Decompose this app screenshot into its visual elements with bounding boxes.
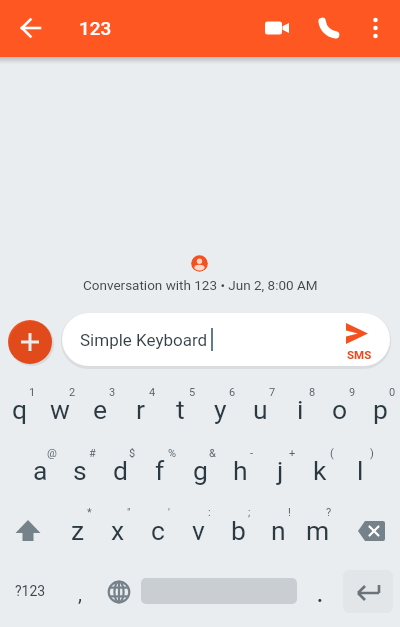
- button[interactable]: SMS: [338, 316, 380, 364]
- staticText: 4: [149, 386, 156, 399]
- staticText: Simple Keyboard: [80, 330, 208, 350]
- button[interactable]: h: [220, 442, 260, 498]
- button[interactable]: o: [320, 381, 360, 437]
- staticText: a: [33, 455, 48, 486]
- staticText: 6: [229, 386, 236, 399]
- staticText: i: [297, 394, 304, 425]
- staticText: u: [253, 394, 268, 425]
- staticText: 3: [109, 386, 116, 399]
- button[interactable]: [2, 503, 54, 559]
- button[interactable]: b: [218, 502, 258, 558]
- button[interactable]: f: [140, 442, 180, 498]
- button[interactable]: z: [58, 502, 98, 558]
- button[interactable]: t: [160, 381, 200, 437]
- staticText: 8: [309, 386, 316, 399]
- staticText: 9: [349, 386, 356, 399]
- button[interactable]: p: [360, 381, 400, 437]
- button[interactable]: ,: [62, 573, 98, 613]
- button[interactable]: j: [260, 442, 300, 498]
- staticText: SMS: [347, 348, 372, 361]
- staticText: s: [73, 455, 87, 486]
- staticText: :: [208, 506, 211, 519]
- staticText: b: [231, 515, 246, 546]
- staticText: w: [50, 394, 70, 425]
- button[interactable]: [8, 320, 52, 364]
- staticText: m: [306, 515, 330, 546]
- staticText: p: [373, 394, 388, 425]
- staticText: t: [176, 394, 185, 425]
- button[interactable]: d: [100, 442, 140, 498]
- staticText: 5: [189, 386, 196, 399]
- button[interactable]: [352, 4, 400, 52]
- button[interactable]: v: [178, 502, 218, 558]
- staticText: #: [89, 447, 96, 460]
- button[interactable]: w: [40, 381, 80, 437]
- button[interactable]: [343, 570, 393, 613]
- staticText: 0: [389, 386, 396, 399]
- staticText: ?: [326, 506, 332, 519]
- staticText: 123: [79, 17, 112, 39]
- staticText: r: [136, 394, 145, 425]
- staticText: ,: [78, 582, 82, 605]
- button[interactable]: [252, 4, 300, 52]
- staticText: c: [151, 515, 165, 546]
- button[interactable]: [7, 4, 55, 52]
- staticText: n: [271, 515, 286, 546]
- staticText: o: [332, 394, 348, 425]
- staticText: ': [168, 506, 170, 519]
- staticText: 1: [29, 386, 36, 399]
- staticText: (: [330, 447, 334, 460]
- staticText: -: [250, 447, 254, 460]
- button[interactable]: u: [240, 381, 280, 437]
- staticText: ;: [248, 506, 251, 519]
- button[interactable]: k: [300, 442, 340, 498]
- button[interactable]: g: [180, 442, 220, 498]
- staticText: !: [288, 506, 291, 519]
- staticText: v: [192, 515, 205, 546]
- button[interactable]: c: [138, 502, 178, 558]
- staticText: x: [111, 515, 125, 546]
- button[interactable]: l: [340, 442, 380, 498]
- button[interactable]: r: [120, 381, 160, 437]
- button[interactable]: .: [302, 574, 338, 614]
- staticText: 2: [69, 386, 76, 399]
- staticText: d: [113, 455, 128, 486]
- staticText: ): [370, 447, 374, 460]
- button[interactable]: m: [298, 502, 338, 558]
- button[interactable]: n: [258, 502, 298, 558]
- staticText: l: [357, 455, 364, 486]
- staticText: h: [233, 455, 248, 486]
- button[interactable]: [304, 4, 352, 52]
- staticText: k: [313, 455, 327, 486]
- staticText: +: [289, 447, 296, 460]
- button[interactable]: [62, 313, 390, 366]
- staticText: 7: [269, 386, 276, 399]
- staticText: y: [214, 394, 227, 425]
- button[interactable]: s: [60, 442, 100, 498]
- button[interactable]: a: [20, 442, 60, 498]
- staticText: @: [47, 447, 57, 460]
- button[interactable]: [99, 572, 139, 612]
- staticText: ": [127, 506, 131, 519]
- button[interactable]: i: [280, 381, 320, 437]
- button[interactable]: ?123: [2, 571, 58, 611]
- staticText: &: [209, 447, 216, 460]
- button[interactable]: x: [98, 502, 138, 558]
- staticText: j: [277, 455, 284, 486]
- staticText: $: [129, 447, 136, 460]
- staticText: g: [193, 455, 208, 486]
- staticText: Conversation with 123 • Jun 2, 8:00 AM: [83, 277, 318, 293]
- button[interactable]: q: [0, 381, 40, 437]
- staticText: f: [155, 455, 165, 486]
- button[interactable]: e: [80, 381, 120, 437]
- staticText: %: [168, 447, 177, 460]
- staticText: ?123: [15, 583, 46, 599]
- staticText: z: [71, 515, 85, 546]
- staticText: .: [317, 583, 323, 606]
- staticText: q: [12, 394, 28, 425]
- staticText: e: [93, 394, 108, 425]
- button[interactable]: [348, 503, 400, 559]
- button[interactable]: y: [200, 381, 240, 437]
- staticText: *: [87, 506, 92, 519]
